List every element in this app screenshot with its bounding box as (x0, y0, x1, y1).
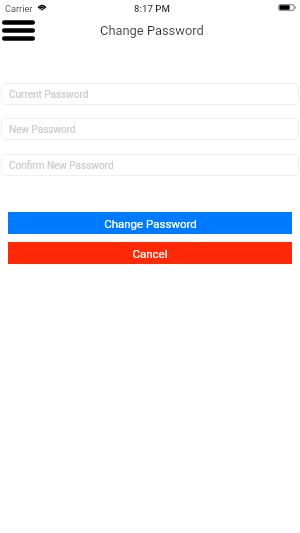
button[interactable]: Change Password (8, 212, 292, 234)
staticText: 8:17 PM (134, 3, 170, 14)
staticText: New Password (9, 124, 76, 136)
staticText: Change Password (100, 23, 204, 38)
staticText: Change Password (104, 217, 197, 230)
button[interactable]: New Password (1, 118, 299, 140)
button[interactable]: Current Password (1, 83, 299, 105)
button[interactable]: Confirm New Password (1, 154, 299, 176)
staticText: Cancel (132, 247, 168, 260)
button[interactable]: Open navigation menu (0, 16, 40, 42)
staticText: Carrier (5, 3, 33, 14)
staticText: Confirm New Password (9, 160, 114, 172)
staticText: Current Password (9, 89, 89, 101)
button[interactable]: Cancel (8, 242, 292, 264)
